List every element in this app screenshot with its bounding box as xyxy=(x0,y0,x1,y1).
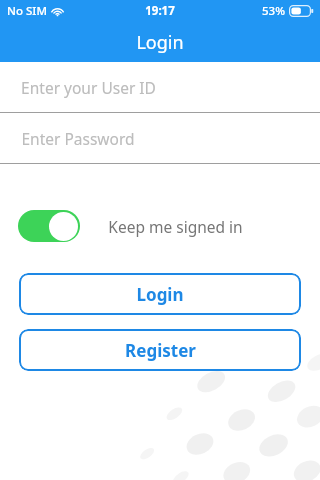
staticText: Login xyxy=(136,30,184,55)
staticText: Register xyxy=(125,339,196,362)
button[interactable]: Enter your User ID xyxy=(0,62,320,113)
staticText: Enter your User ID xyxy=(21,77,156,98)
button[interactable]: Register xyxy=(19,329,301,371)
staticText: 53% xyxy=(262,3,285,19)
button[interactable]: Login xyxy=(19,273,301,315)
staticText: Login xyxy=(136,283,184,306)
staticText: Enter Password xyxy=(21,128,135,149)
button[interactable]: Keep me signed in xyxy=(0,206,320,246)
staticText: 19:17 xyxy=(145,3,175,19)
staticText: No SIM xyxy=(7,3,47,19)
button[interactable]: Enter Password xyxy=(0,113,320,164)
staticText: Keep me signed in xyxy=(108,216,243,237)
